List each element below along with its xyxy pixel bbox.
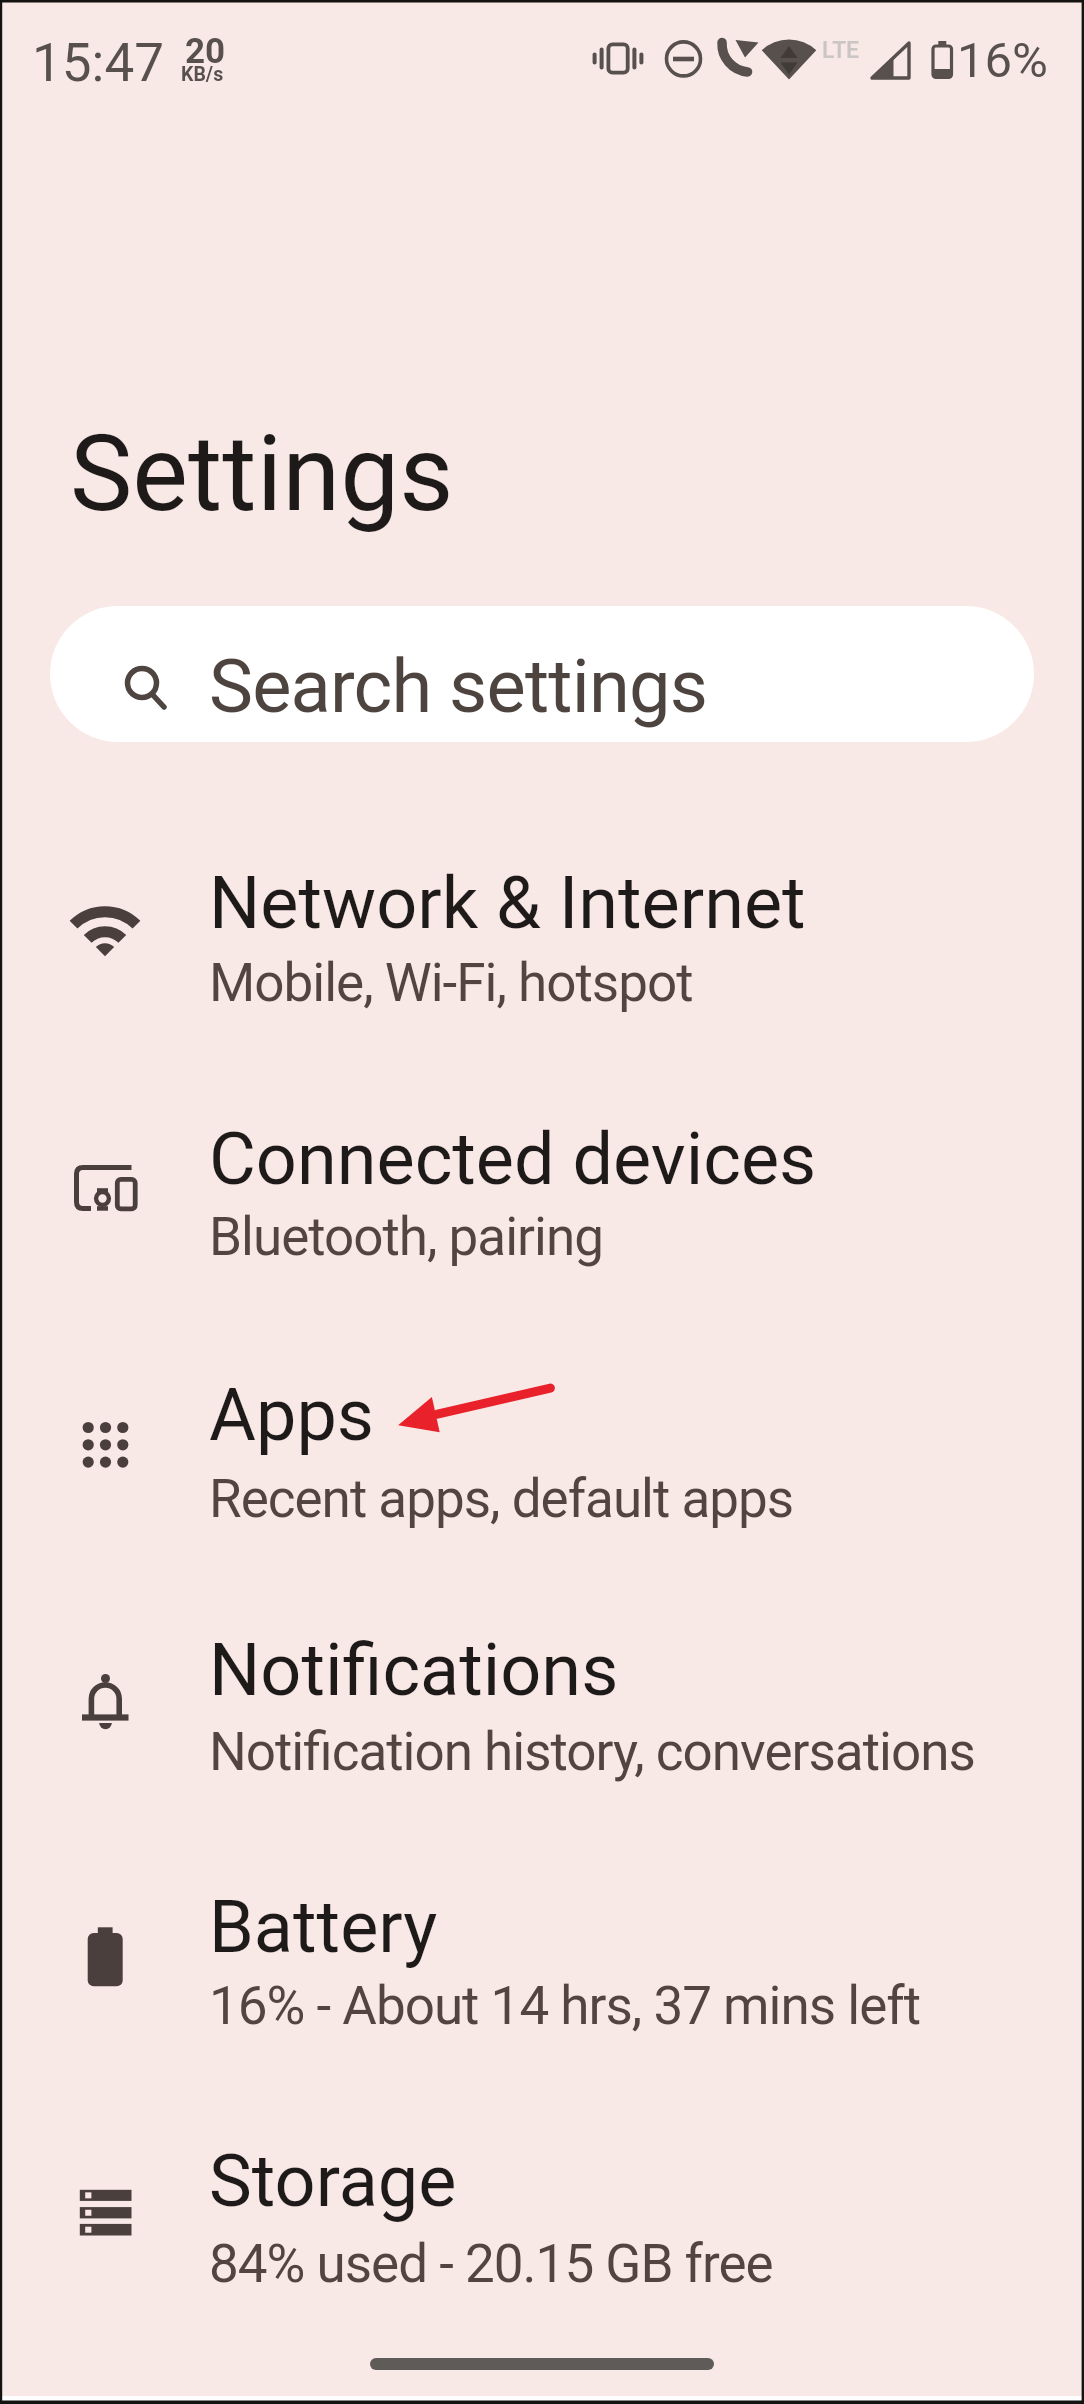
staticText: Bluetooth, pairing [209,1206,603,1268]
staticText: 15:47 [32,32,164,94]
staticText: LTE [822,37,860,64]
button[interactable]: Apps [0,1331,1084,1577]
staticText: 84% used - 20.15 GB free [209,2233,773,2295]
staticText: Settings [70,413,454,536]
button[interactable]: Notifications [0,1586,1084,1832]
staticText: Search settings [209,643,708,730]
staticText: 20 [185,31,226,72]
button[interactable]: Storage [0,2097,1084,2343]
button[interactable]: Search settings [50,606,1034,742]
staticText: Connected devices [209,1117,817,1201]
staticText: Network & Internet [209,861,806,945]
staticText: Recent apps, default apps [209,1468,794,1530]
staticText: Apps [209,1373,374,1457]
staticText: Notifications [209,1628,619,1712]
staticText: Mobile, Wi-Fi, hotspot [209,952,693,1014]
staticText: Notification history, conversations [209,1721,975,1783]
button[interactable]: Connected devices [0,1075,1084,1321]
button[interactable]: Network & Internet [0,819,1084,1065]
staticText: 16% [957,32,1048,89]
button[interactable]: Battery [0,1843,1084,2089]
staticText: Battery [209,1885,438,1969]
staticText: KB/s [181,63,224,86]
staticText: 16% - About 14 hrs, 37 mins left [209,1975,921,2037]
staticText: Storage [209,2139,457,2223]
